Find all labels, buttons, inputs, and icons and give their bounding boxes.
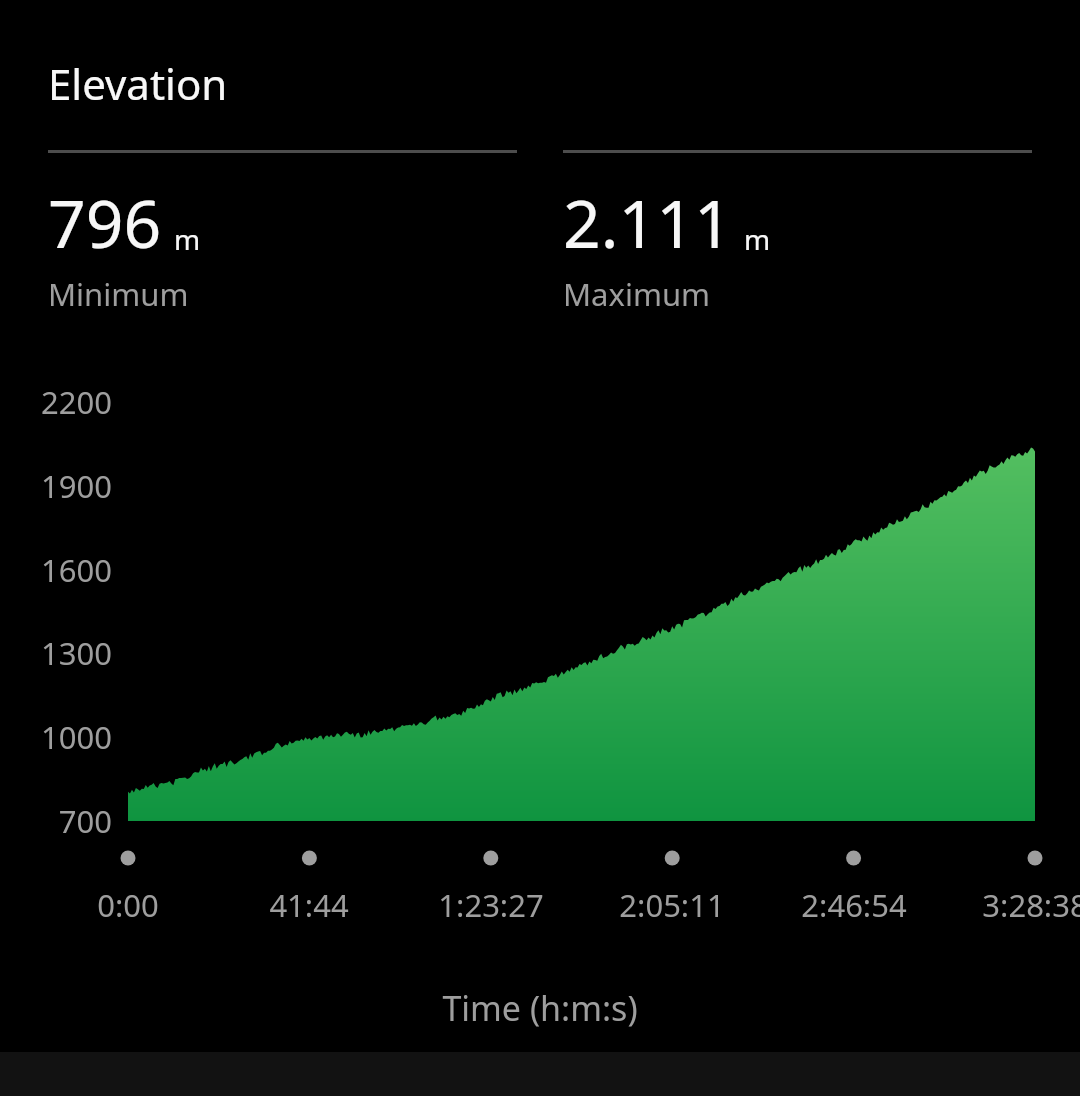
staticText: 1:23:27 — [381, 884, 601, 926]
staticText: Minimum — [48, 273, 189, 315]
staticText: 1600 — [0, 549, 112, 591]
staticText: 2:05:11 — [562, 884, 782, 926]
button[interactable]: 2.111 — [563, 150, 1032, 315]
staticText: m — [744, 220, 771, 258]
staticText: 1900 — [0, 465, 112, 507]
staticText: Maximum — [563, 273, 711, 315]
staticText: 41:44 — [199, 884, 419, 926]
staticText: 2:46:54 — [744, 884, 964, 926]
staticText: 796 — [48, 177, 162, 267]
staticText: 700 — [0, 800, 112, 842]
staticText: Time (h:m:s) — [0, 985, 1080, 1031]
staticText: 3:28:38 — [925, 884, 1080, 926]
staticText: Elevation — [48, 55, 228, 112]
button[interactable]: 796 — [48, 150, 517, 315]
staticText: 1000 — [0, 716, 112, 758]
staticText: m — [174, 220, 201, 258]
staticText: 1300 — [0, 632, 112, 674]
staticText: 0:00 — [18, 884, 238, 926]
staticText: 2200 — [0, 381, 112, 423]
staticText: 2.111 — [563, 177, 732, 267]
